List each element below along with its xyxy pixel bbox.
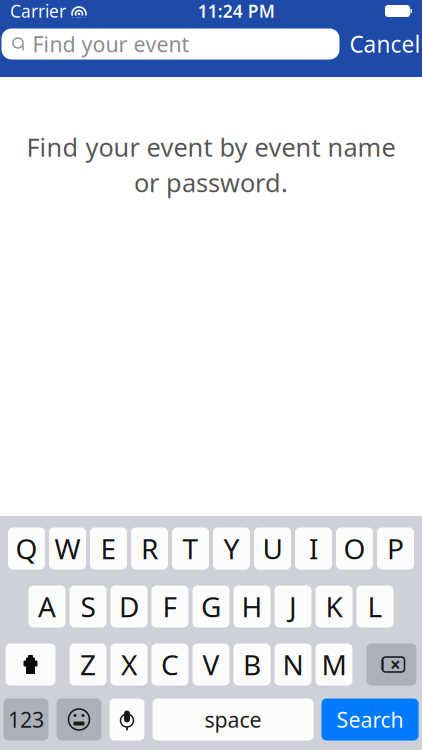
staticText: M	[321, 646, 346, 683]
button[interactable]: Delete	[366, 643, 416, 685]
staticText: B	[243, 646, 261, 683]
staticText: J	[289, 588, 297, 625]
staticText: L	[367, 588, 382, 625]
staticText: C	[161, 646, 179, 683]
staticText	[66, 0, 71, 22]
staticText: Search	[336, 705, 403, 734]
staticText: H	[241, 588, 262, 625]
button[interactable]: Cancel	[349, 28, 420, 59]
staticText: Y	[223, 530, 239, 567]
staticText: Cancel	[349, 29, 420, 59]
staticText: ×	[390, 652, 401, 677]
button[interactable]: 123	[3, 698, 48, 740]
button[interactable]: S	[69, 585, 106, 627]
staticText: X	[121, 646, 137, 683]
staticText: R	[141, 530, 158, 567]
staticText: Find your event	[32, 30, 189, 58]
button[interactable]: R	[131, 527, 168, 569]
button[interactable]: L	[356, 585, 393, 627]
button[interactable]: space	[152, 698, 313, 740]
staticText: N	[282, 646, 303, 683]
staticText: Carrier	[10, 0, 66, 22]
button[interactable]: W	[49, 527, 86, 569]
button[interactable]: U	[254, 527, 291, 569]
button[interactable]: O	[336, 527, 373, 569]
staticText: F	[162, 588, 177, 625]
staticText: E	[100, 530, 116, 567]
button[interactable]: K	[315, 585, 352, 627]
button[interactable]: C	[151, 643, 188, 685]
staticText: Z	[80, 646, 96, 683]
button[interactable]: J	[274, 585, 311, 627]
staticText: I	[309, 530, 318, 567]
button[interactable]: F	[151, 585, 188, 627]
staticText: S	[80, 588, 95, 625]
button[interactable]: Y	[213, 527, 250, 569]
button[interactable]: Q	[8, 527, 45, 569]
button[interactable]: I	[295, 527, 332, 569]
staticText: P	[387, 530, 404, 567]
staticText: A	[38, 588, 56, 625]
button[interactable]: X	[110, 643, 147, 685]
button[interactable]: M	[315, 643, 352, 685]
staticText: O	[343, 530, 365, 567]
button[interactable]: Shift	[5, 643, 55, 685]
staticText: or password.	[134, 166, 288, 199]
button[interactable]: Search	[321, 698, 418, 740]
button[interactable]: T	[172, 527, 209, 569]
button[interactable]: D	[110, 585, 147, 627]
staticText: U	[262, 530, 282, 567]
button[interactable]: H	[233, 585, 270, 627]
staticText: W	[54, 530, 80, 567]
button[interactable]: V	[192, 643, 229, 685]
staticText: 123	[8, 705, 44, 734]
button[interactable]: G	[192, 585, 229, 627]
button[interactable]: B	[233, 643, 270, 685]
button[interactable]: P	[377, 527, 414, 569]
button[interactable]: Dictate	[109, 698, 144, 740]
button[interactable]: A	[28, 585, 65, 627]
staticText: K	[325, 588, 342, 625]
staticText: space	[204, 705, 261, 734]
button[interactable]: N	[274, 643, 311, 685]
staticText: 11:24 PM	[198, 0, 275, 22]
button[interactable]: E	[90, 527, 127, 569]
staticText: Find your event by event name	[26, 130, 395, 164]
button[interactable]: Z	[69, 643, 106, 685]
staticText: T	[182, 530, 198, 567]
staticText: Q	[15, 530, 37, 567]
staticText: V	[202, 646, 219, 683]
staticText: D	[119, 588, 139, 625]
button[interactable]: Emoji	[56, 698, 101, 740]
staticText: G	[201, 588, 221, 625]
